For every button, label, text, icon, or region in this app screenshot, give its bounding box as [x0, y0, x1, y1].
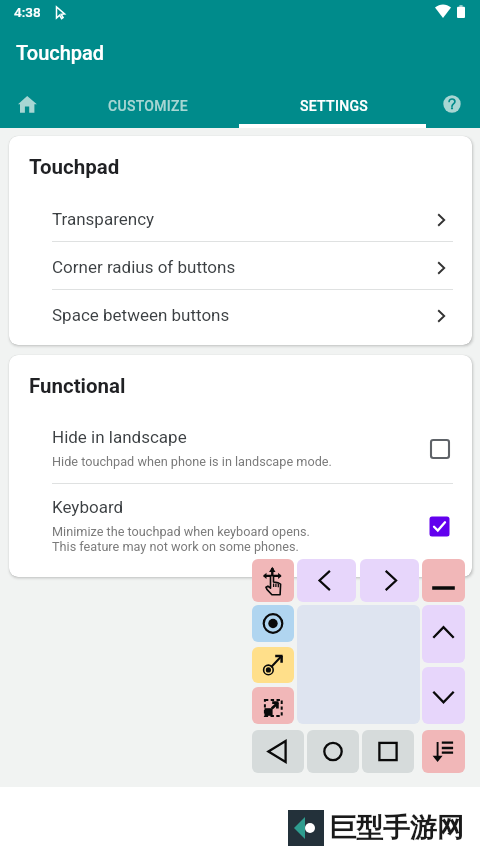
staticText: Touchpad	[16, 41, 105, 64]
button[interactable]: Help	[426, 84, 480, 128]
staticText: Touchpad	[29, 155, 120, 179]
staticText: Functional	[29, 374, 126, 398]
button[interactable]: Previous	[297, 559, 356, 602]
button[interactable]: Move touchpad	[252, 559, 294, 602]
staticText: 4:38	[14, 4, 41, 20]
button[interactable]: Drag	[252, 647, 294, 683]
button[interactable]: Minimize	[422, 559, 465, 602]
button[interactable]: Tap	[252, 605, 294, 642]
button[interactable]: CUSTOMIZE	[56, 84, 240, 128]
staticText: Space between buttons	[52, 305, 230, 325]
button[interactable]: Home	[307, 730, 359, 773]
staticText: Hide touchpad when phone is in landscape…	[52, 454, 332, 469]
button[interactable]: Back	[252, 730, 304, 773]
staticText: Keyboard	[52, 497, 124, 517]
button[interactable]: Transparency	[9, 194, 472, 242]
button[interactable]: Corner radius of buttons	[9, 242, 472, 290]
button[interactable]: Home	[0, 84, 55, 128]
button[interactable]: Hide in landscape	[9, 427, 472, 482]
button[interactable]: Next	[360, 559, 419, 602]
staticText: Hide in landscape	[52, 427, 187, 447]
button[interactable]: Keyboard	[9, 497, 472, 567]
button[interactable]: Scroll down	[422, 667, 465, 724]
staticText: Corner radius of buttons	[52, 257, 236, 277]
button[interactable]: Sort	[422, 730, 465, 773]
button[interactable]: Recents	[362, 730, 414, 773]
button[interactable]: SETTINGS	[241, 84, 428, 128]
staticText: CUSTOMIZE	[108, 98, 189, 114]
button[interactable]: Scroll up	[422, 605, 465, 663]
staticText: Minimize the touchpad when keyboard open…	[52, 524, 310, 554]
staticText: SETTINGS	[300, 98, 369, 114]
staticText: Transparency	[52, 209, 155, 229]
button[interactable]: Space between buttons	[9, 290, 472, 338]
staticText: 巨型手游网	[329, 811, 464, 845]
button[interactable]: Resize	[252, 687, 294, 724]
